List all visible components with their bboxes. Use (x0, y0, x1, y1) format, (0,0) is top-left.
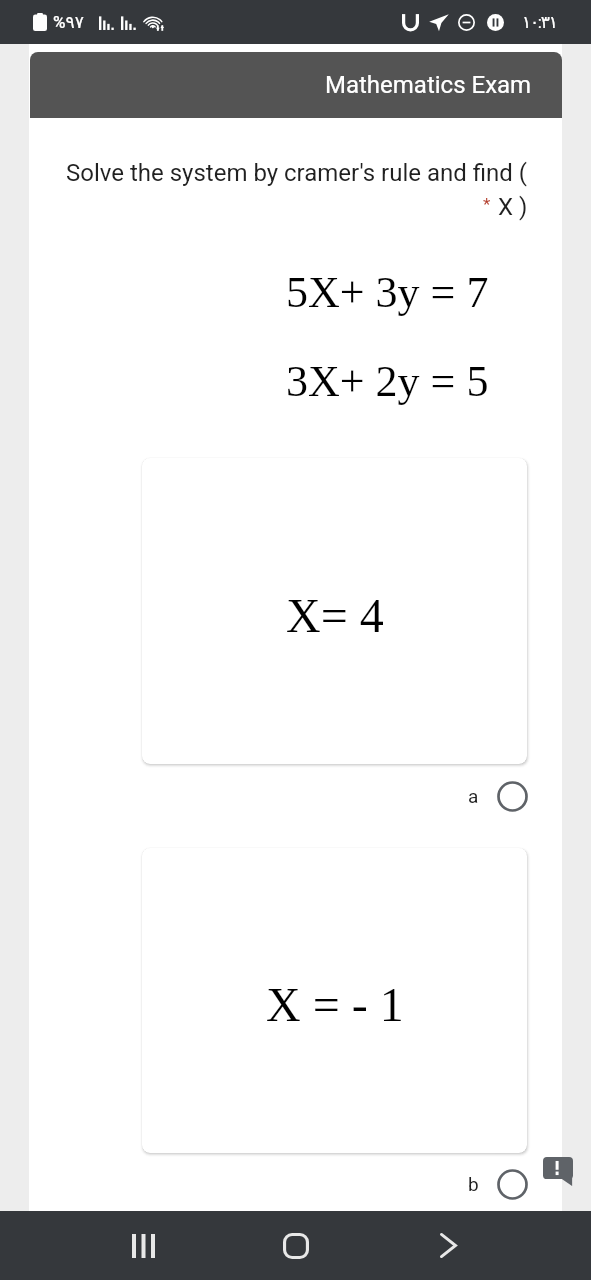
staticText: b (468, 1173, 479, 1195)
button[interactable]: Mathematics Exam (30, 52, 562, 118)
staticText: X = - 1 (266, 978, 404, 1031)
staticText: 3X+ 2y = 5 (286, 357, 489, 406)
button[interactable]: b (468, 1167, 528, 1201)
staticText: Solve the system by cramer's rule and fi… (66, 159, 527, 187)
staticText: ١٠:٣١ (522, 12, 557, 32)
button[interactable]: Report question (543, 1157, 573, 1186)
staticText: 5X+ 3y = 7 (286, 268, 489, 317)
staticText: X= 4 (286, 589, 384, 642)
button[interactable]: X = - 1 (142, 848, 527, 1153)
staticText: a (468, 785, 479, 807)
button[interactable]: a (468, 779, 528, 813)
button[interactable]: X= 4 (142, 458, 527, 764)
staticText: * (483, 194, 491, 214)
staticText: %٩٧ (53, 12, 84, 32)
staticText: Mathematics Exam (325, 71, 532, 99)
button[interactable]: Back (372, 1211, 524, 1280)
staticText: X ) (498, 193, 528, 221)
button[interactable]: Home (220, 1211, 372, 1280)
button[interactable]: Recent apps (67, 1211, 220, 1280)
